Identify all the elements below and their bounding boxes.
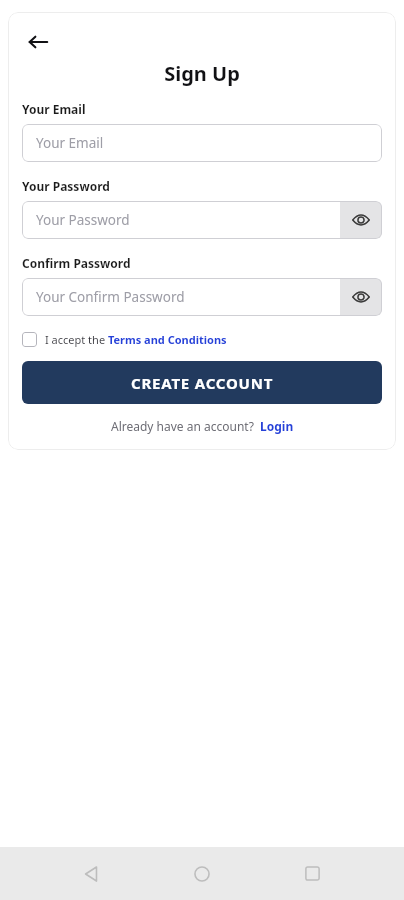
- button[interactable]: Show password: [340, 279, 382, 315]
- staticText: Your Email: [36, 134, 104, 152]
- button[interactable]: Back: [37, 847, 147, 900]
- staticText: I accept the Terms and Conditions: [45, 332, 227, 347]
- staticText: Your Confirm Password: [36, 288, 185, 306]
- button[interactable]: Home: [147, 847, 257, 900]
- button[interactable]: Your Email: [22, 124, 382, 162]
- staticText: Login: [260, 418, 294, 434]
- button[interactable]: Recent apps: [257, 847, 367, 900]
- button[interactable]: I accept the Terms and Conditions: [22, 332, 382, 347]
- staticText: Your Password: [22, 178, 110, 194]
- staticText: Already have an account?: [111, 418, 254, 434]
- staticText: Confirm Password: [22, 255, 131, 271]
- button[interactable]: CREATE ACCOUNT: [22, 361, 382, 404]
- button[interactable]: Back: [22, 26, 54, 58]
- staticText: CREATE ACCOUNT: [131, 373, 274, 393]
- staticText: Your Email: [22, 101, 86, 117]
- button[interactable]: Your Password: [22, 201, 382, 239]
- button[interactable]: Already have an account?: [111, 418, 294, 434]
- staticText: Sign Up: [22, 60, 382, 87]
- button[interactable]: Show password: [340, 202, 382, 238]
- staticText: Your Password: [36, 211, 130, 229]
- button[interactable]: Your Confirm Password: [22, 278, 382, 316]
